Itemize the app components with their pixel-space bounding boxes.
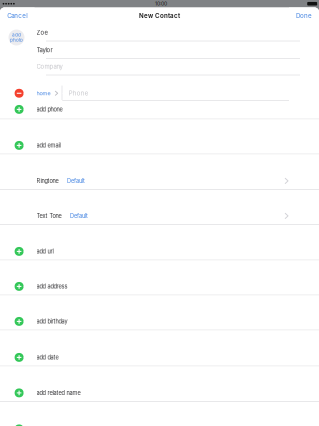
staticText: Text Tone <box>37 212 62 219</box>
staticText: Company <box>37 63 63 70</box>
button[interactable]: add social profile <box>0 402 319 426</box>
button[interactable]: add address <box>0 260 319 294</box>
staticText: add url <box>36 248 53 255</box>
staticText: add birthday <box>36 318 67 325</box>
staticText: Zoe <box>37 29 48 36</box>
staticText: New Contact <box>139 12 180 19</box>
staticText: add email <box>36 142 60 149</box>
button[interactable]: Add photo <box>8 29 24 45</box>
button[interactable]: home <box>36 90 58 96</box>
staticText: Phone <box>69 90 88 97</box>
staticText: photo <box>10 37 23 43</box>
button[interactable]: Cancel <box>0 7 35 24</box>
staticText: Cancel <box>7 12 27 19</box>
staticText: add address <box>36 283 67 290</box>
button[interactable]: add email <box>0 119 319 153</box>
staticText: add related name <box>36 389 80 396</box>
button[interactable]: Ringtone <box>0 154 319 189</box>
staticText: add date <box>36 354 58 361</box>
button[interactable]: Done <box>289 7 319 24</box>
button[interactable]: add phone <box>0 101 319 118</box>
button[interactable]: add birthday <box>0 295 319 329</box>
staticText: Ringtone <box>37 177 59 184</box>
button[interactable]: add date <box>0 330 319 365</box>
staticText: 10:00 <box>155 1 167 7</box>
staticText: add phone <box>36 106 62 113</box>
staticText: home <box>36 90 50 96</box>
button[interactable]: add related name <box>0 366 319 401</box>
staticText: Default <box>67 177 85 184</box>
staticText: Taylor <box>37 46 53 54</box>
staticText: Default <box>70 212 88 219</box>
staticText: add <box>12 32 21 38</box>
button[interactable]: add url <box>0 225 319 259</box>
button[interactable]: Text Tone <box>0 190 319 224</box>
staticText: Done <box>296 12 312 19</box>
